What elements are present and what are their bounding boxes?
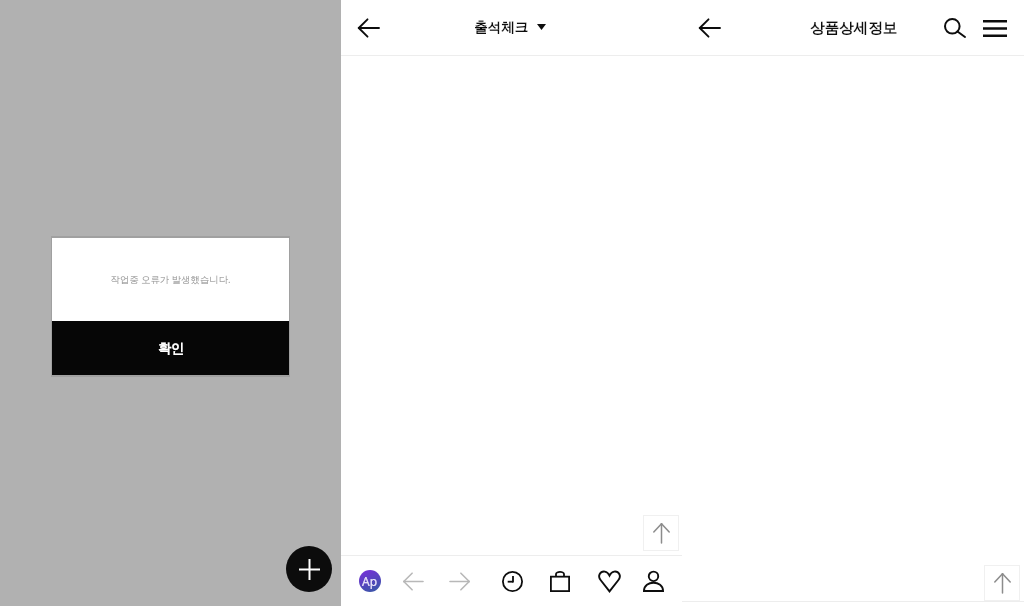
- button[interactable]: Profile: [636, 564, 670, 598]
- button[interactable]: 확인: [52, 321, 289, 375]
- staticText: Ap: [362, 573, 378, 589]
- staticText: 작업중 오류가 발생했습니다.: [110, 273, 231, 286]
- staticText: 상품상세정보: [810, 19, 897, 37]
- button[interactable]: Back: [348, 8, 388, 48]
- button[interactable]: Bag: [543, 564, 577, 598]
- button[interactable]: Menu: [975, 8, 1015, 48]
- button[interactable]: Forward: [443, 564, 477, 598]
- button[interactable]: Add: [286, 546, 332, 592]
- button[interactable]: Search: [935, 8, 975, 48]
- staticText: 출석체크: [474, 19, 528, 36]
- staticText: 확인: [158, 340, 184, 356]
- button[interactable]: Back: [689, 8, 729, 48]
- button[interactable]: Ap: [359, 570, 381, 592]
- button[interactable]: Favorites: [592, 564, 626, 598]
- button[interactable]: Scroll to top: [643, 515, 679, 551]
- button[interactable]: Back: [396, 564, 430, 598]
- button[interactable]: History: [495, 564, 529, 598]
- button[interactable]: Scroll to top: [984, 565, 1020, 601]
